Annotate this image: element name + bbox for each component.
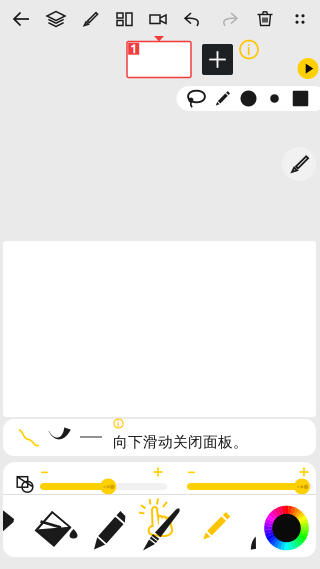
button[interactable]: Pen nib [250,536,258,552]
button[interactable]: Undo [175,1,211,37]
button[interactable]: Add frame [202,44,233,75]
staticText: i [117,417,120,430]
button[interactable]: Large brush [235,86,261,111]
button[interactable]: Brush [73,1,107,37]
button[interactable]: Shape [13,472,37,496]
button[interactable]: Record [141,1,175,37]
button[interactable]: Lasso [183,86,209,111]
button[interactable]: Play [297,58,318,79]
button[interactable]: Yellow pencil [198,508,234,544]
staticText: 1 [130,41,137,57]
button[interactable]: Info [240,40,258,58]
button[interactable]: Layout [107,1,141,37]
button[interactable]: Delete [247,1,283,37]
staticText: 向下滑动关闭面板。 [113,433,248,451]
button[interactable]: Small brush [261,86,287,111]
button[interactable]: Layers [39,1,73,37]
button[interactable]: Marker [92,510,126,551]
button[interactable]: Colour [264,506,309,550]
button[interactable]: Back [3,1,39,37]
button[interactable]: Square brush [287,86,313,111]
button[interactable]: Flat brush [0,498,21,548]
button[interactable]: Pencil [209,86,235,111]
button[interactable]: Paint bucket [34,510,78,550]
button[interactable]: Fountain pen [137,497,183,553]
staticText: i [247,40,251,59]
button[interactable]: Redo [211,1,247,37]
button[interactable]: Brush settings [282,147,316,181]
button[interactable]: More [283,1,317,37]
